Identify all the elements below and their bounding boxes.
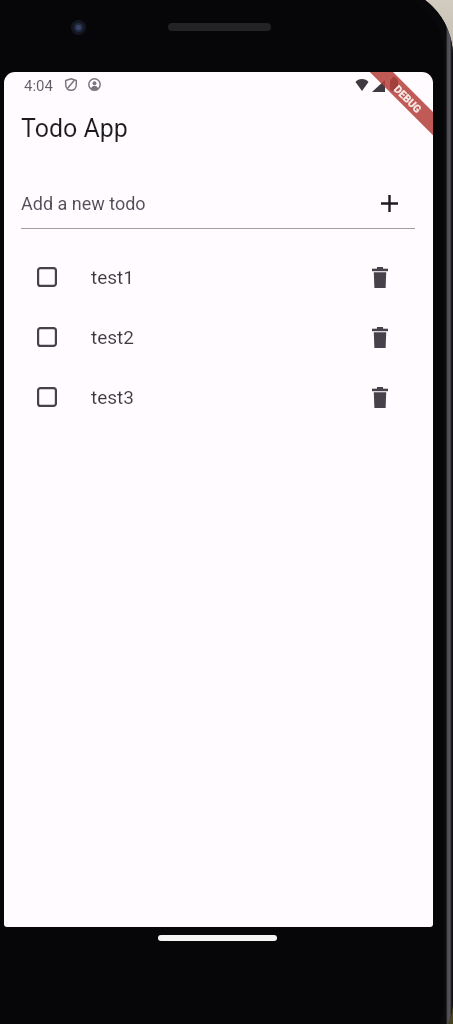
staticText: test2 [91, 326, 134, 348]
staticText: test1 [91, 266, 134, 288]
staticText: Add a new todo [21, 193, 146, 214]
button[interactable]: Delete test1 [364, 261, 396, 293]
button[interactable]: Delete test2 [364, 321, 396, 353]
staticText: test3 [91, 386, 134, 408]
button[interactable]: Add a new todo [4, 184, 433, 228]
button[interactable]: Delete test3 [364, 381, 396, 413]
button[interactable]: Toggle test2 [32, 322, 62, 352]
button[interactable]: Toggle test1 [4, 247, 433, 307]
button[interactable]: Add todo [371, 185, 407, 221]
staticText: DEBUG [392, 83, 424, 115]
button[interactable]: Toggle test1 [32, 262, 62, 292]
staticText: Todo App [21, 114, 128, 143]
button[interactable]: Toggle test3 [32, 382, 62, 412]
button[interactable]: Toggle test3 [4, 367, 433, 427]
staticText: 4:04 [24, 77, 53, 95]
button[interactable]: Toggle test2 [4, 307, 433, 367]
